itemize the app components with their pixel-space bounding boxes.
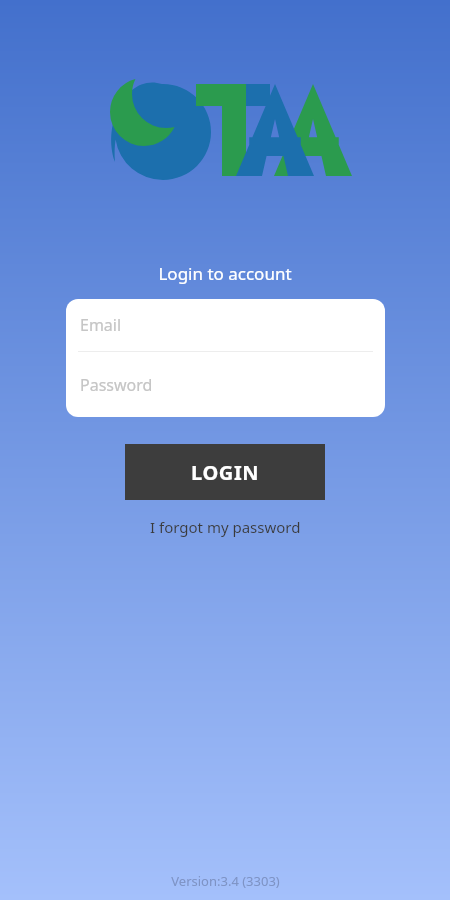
button[interactable]: Email [66,299,385,351]
staticText: Version:3.4 (3303) [171,872,280,890]
button[interactable]: Password [66,352,385,417]
staticText: Email [80,314,122,336]
button[interactable]: LOGIN [125,444,325,500]
button[interactable]: I forgot my password [140,513,311,541]
staticText: Password [80,374,153,396]
staticText: Login to account [158,262,292,285]
staticText: LOGIN [191,459,260,486]
staticText: I forgot my password [150,517,301,537]
